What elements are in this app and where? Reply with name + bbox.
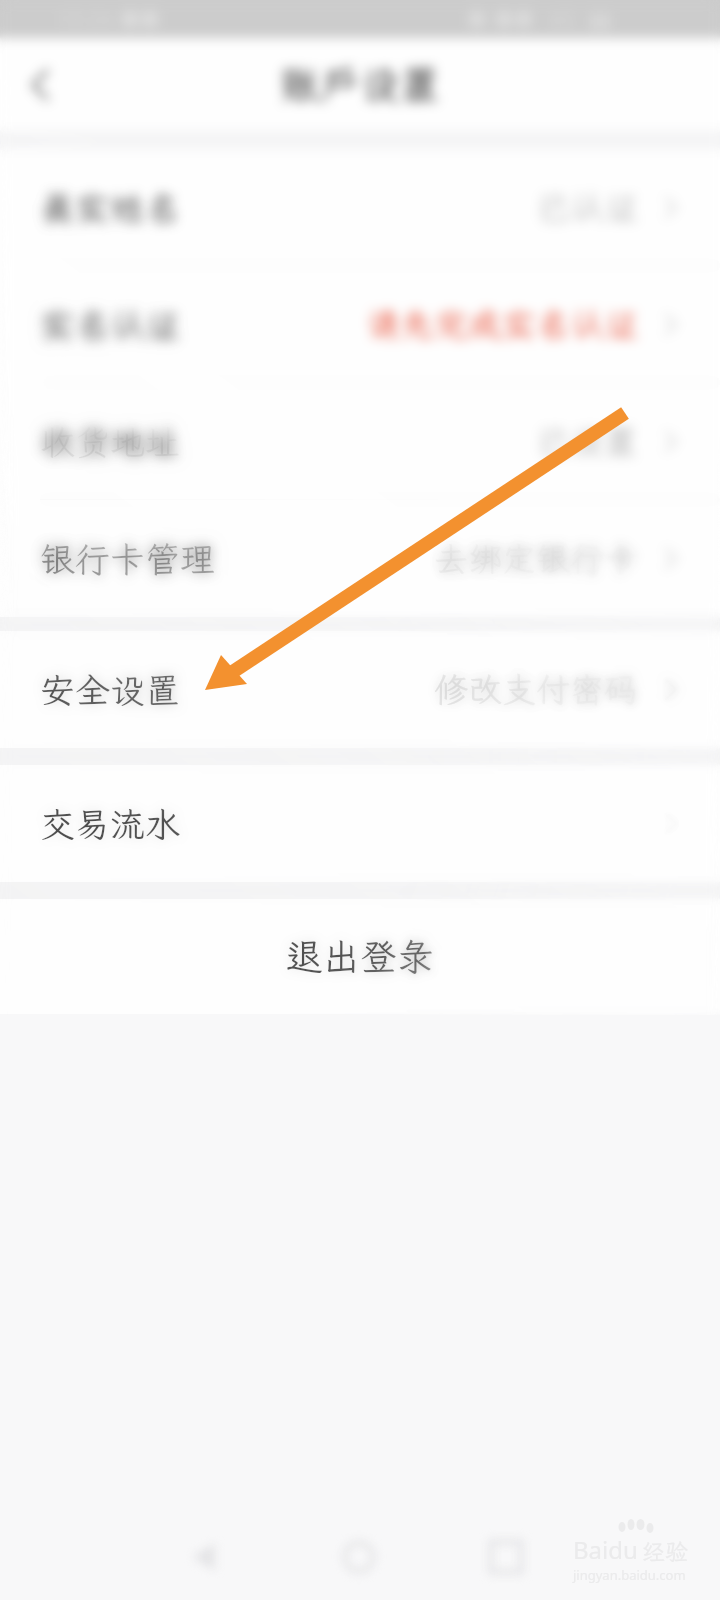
button[interactable]: Back	[0, 45, 80, 125]
button[interactable]: 安全设置	[0, 631, 720, 748]
button[interactable]: 交易流水	[0, 765, 720, 882]
button[interactable]: 收货地址	[0, 383, 720, 500]
staticText: 交易流水	[40, 801, 181, 847]
staticText: 收货地址	[40, 419, 181, 465]
button[interactable]: 收货地址	[0, 383, 720, 500]
button[interactable]: 实名认证	[0, 266, 720, 383]
staticText: 请先完成实名认证	[366, 302, 638, 347]
button[interactable]: Recents	[476, 1527, 536, 1587]
button[interactable]: Back	[0, 45, 80, 125]
button[interactable]: 退出登录	[0, 899, 720, 1014]
staticText: 去绑定银行卡	[434, 536, 638, 581]
button[interactable]: 银行卡管理	[0, 500, 720, 617]
button[interactable]: 安全设置	[0, 631, 720, 748]
staticText: 去绑定银行卡	[434, 536, 638, 581]
button[interactable]: 交易流水	[0, 765, 720, 882]
staticText: 请先完成实名认证	[366, 302, 638, 347]
staticText: 修改支付密码	[434, 667, 638, 712]
button[interactable]: 真实姓名	[0, 149, 720, 266]
button[interactable]: 实名认证	[0, 266, 720, 383]
button[interactable]: 收货地址	[0, 383, 720, 500]
staticText: 交易流水	[40, 801, 181, 847]
staticText: 银行卡管理	[40, 536, 216, 582]
staticText: 去绑定银行卡	[434, 536, 638, 581]
staticText: 真实姓名	[40, 185, 181, 231]
staticText: 交易流水	[40, 801, 181, 847]
staticText: 退出登录	[286, 932, 434, 981]
staticText: 真实姓名	[40, 185, 181, 231]
staticText: 实名认证	[40, 302, 181, 348]
staticText: 请先完成实名认证	[366, 302, 638, 347]
staticText: Baidu	[573, 1533, 638, 1566]
staticText: 收货地址	[40, 419, 181, 465]
button[interactable]: 真实姓名	[0, 149, 720, 266]
staticText: 退出登录	[286, 932, 434, 981]
staticText: 账户设置	[280, 58, 440, 111]
staticText: 已设置	[536, 419, 638, 464]
button[interactable]: 交易流水	[0, 765, 720, 882]
staticText: 安全设置	[40, 667, 181, 713]
staticText: 安全设置	[40, 667, 181, 713]
staticText: 修改支付密码	[434, 667, 638, 712]
button[interactable]: 交易流水	[0, 765, 720, 882]
button[interactable]: 真实姓名	[0, 149, 720, 266]
staticText: 账户设置	[280, 58, 440, 111]
button[interactable]: 银行卡管理	[0, 500, 720, 617]
staticText: 经验	[642, 1536, 688, 1566]
staticText: 银行卡管理	[40, 536, 216, 582]
staticText: 银行卡管理	[40, 536, 216, 582]
button[interactable]: 退出登录	[0, 899, 720, 1014]
staticText: 退出登录	[286, 932, 434, 981]
staticText: 实名认证	[40, 302, 181, 348]
staticText: 请先完成实名认证	[366, 302, 638, 347]
button[interactable]: 退出登录	[0, 899, 720, 1014]
button[interactable]: 安全设置	[0, 631, 720, 748]
staticText: 已认证	[536, 185, 638, 230]
staticText: 已设置	[536, 419, 638, 464]
staticText: 银行卡管理	[40, 536, 216, 582]
button[interactable]: 真实姓名	[0, 149, 720, 266]
button[interactable]: 交易流水	[0, 765, 720, 882]
button[interactable]: 实名认证	[0, 266, 720, 383]
button[interactable]: 收货地址	[0, 383, 720, 500]
button[interactable]: 收货地址	[0, 383, 720, 500]
staticText: 账户设置	[280, 58, 440, 111]
button[interactable]: 银行卡管理	[0, 500, 720, 617]
button[interactable]: 银行卡管理	[0, 500, 720, 617]
button[interactable]: 退出登录	[0, 899, 720, 1014]
staticText: 交易流水	[40, 801, 181, 847]
button[interactable]: 安全设置	[0, 631, 720, 748]
staticText: 已认证	[536, 185, 638, 230]
staticText: 收货地址	[40, 419, 181, 465]
staticText: 修改支付密码	[434, 667, 638, 712]
button[interactable]: 退出登录	[0, 899, 720, 1014]
button[interactable]: 实名认证	[0, 266, 720, 383]
staticText: 实名认证	[40, 302, 181, 348]
staticText: 修改支付密码	[434, 667, 638, 712]
button[interactable]: 银行卡管理	[0, 500, 720, 617]
button[interactable]: 实名认证	[0, 266, 720, 383]
staticText: 账户设置	[280, 58, 440, 111]
staticText: 实名认证	[40, 302, 181, 348]
staticText: 已设置	[536, 419, 638, 464]
button[interactable]: Back	[175, 1527, 235, 1587]
staticText: 修改支付密码	[434, 667, 638, 712]
button[interactable]: 安全设置	[0, 631, 720, 748]
staticText: 请先完成实名认证	[366, 302, 638, 347]
button[interactable]: Back	[0, 45, 80, 125]
staticText: 实名认证	[40, 302, 181, 348]
staticText: 安全设置	[40, 667, 181, 713]
button[interactable]: 真实姓名	[0, 149, 720, 266]
staticText: 银行卡管理	[40, 536, 216, 582]
button[interactable]: Back	[0, 45, 80, 125]
button[interactable]: Back	[0, 45, 80, 125]
